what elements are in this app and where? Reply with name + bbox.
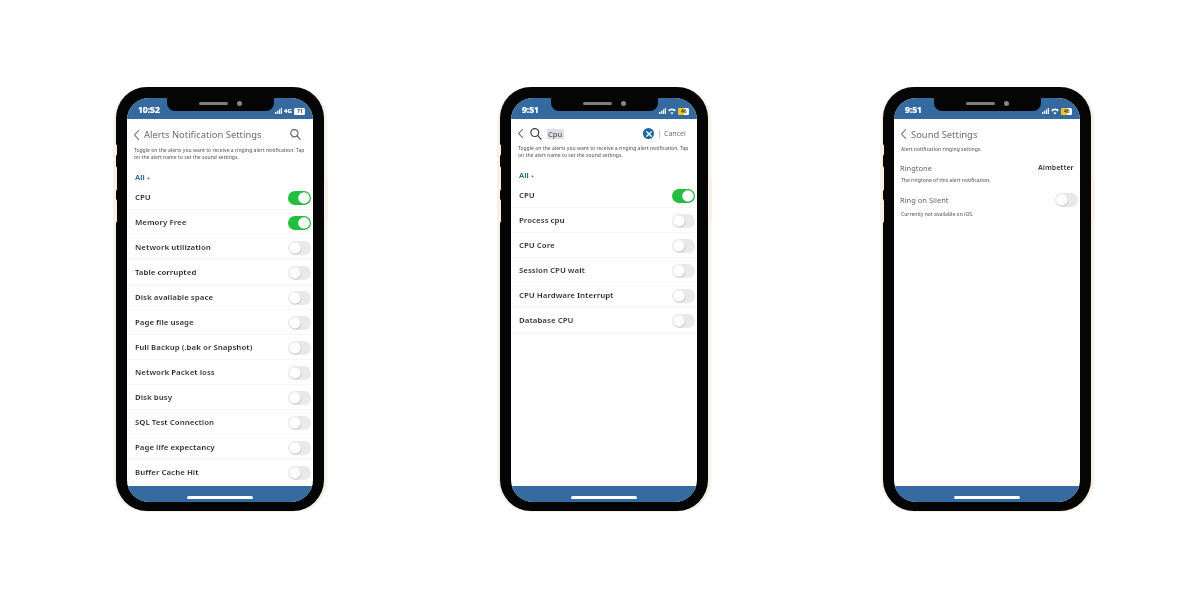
- button[interactable]: Off: [672, 214, 695, 228]
- button[interactable]: On: [288, 216, 311, 230]
- staticText: Process cpu: [519, 215, 672, 226]
- button[interactable]: Off: [288, 416, 311, 430]
- staticText: Database CPU: [519, 315, 672, 326]
- button[interactable]: Ring on Silent: [894, 193, 1080, 207]
- button[interactable]: Page file usage: [127, 310, 313, 335]
- staticText: 46: [681, 108, 687, 115]
- button[interactable]: On: [288, 191, 311, 205]
- staticText: SQL Test Connection: [135, 417, 288, 428]
- button[interactable]: Off: [288, 241, 311, 255]
- button[interactable]: Back: [516, 127, 525, 140]
- staticText: Page file usage: [135, 317, 288, 328]
- button[interactable]: Off: [288, 466, 311, 480]
- staticText: CPU Core: [519, 240, 672, 251]
- staticText: 9:51: [905, 104, 922, 116]
- button[interactable]: Disk busy: [127, 385, 313, 410]
- button[interactable]: Full Backup (.bak or Snapshot): [127, 335, 313, 360]
- button[interactable]: Back: [132, 128, 141, 142]
- staticText: 9:51: [522, 104, 539, 116]
- staticText: 46: [1064, 108, 1070, 115]
- staticText: Toggle on the alerts you want to receive…: [518, 145, 692, 159]
- staticText: All: [135, 172, 145, 182]
- button[interactable]: CPU Hardware Interrupt: [511, 283, 697, 308]
- staticText: Ring on Silent: [900, 195, 1055, 205]
- button[interactable]: Off: [672, 264, 695, 278]
- staticText: The ringtone of this alert notification.: [901, 177, 991, 184]
- button[interactable]: SQL Test Connection: [127, 410, 313, 435]
- button[interactable]: Off: [1055, 193, 1078, 207]
- staticText: CPU: [135, 192, 288, 203]
- button[interactable]: Off: [288, 316, 311, 330]
- button[interactable]: CPU: [511, 183, 697, 208]
- staticText: Session CPU wait: [519, 265, 672, 276]
- staticText: Network Packet loss: [135, 367, 288, 378]
- staticText: Alerts Notification Settings: [144, 128, 288, 141]
- button[interactable]: All: [511, 169, 540, 181]
- button[interactable]: Off: [288, 291, 311, 305]
- button[interactable]: All: [127, 171, 156, 183]
- staticText: CPU: [519, 190, 672, 201]
- button[interactable]: Page life expectancy: [127, 435, 313, 460]
- button[interactable]: On: [672, 189, 695, 203]
- staticText: Alert notification ringing settings.: [901, 146, 982, 153]
- button[interactable]: Process cpu: [511, 208, 697, 233]
- button[interactable]: Disk available space: [127, 285, 313, 310]
- staticText: 71: [297, 108, 303, 115]
- button[interactable]: Back: [899, 127, 908, 141]
- staticText: Ringtone: [900, 163, 1038, 173]
- staticText: Disk busy: [135, 392, 288, 403]
- button[interactable]: Memory Free: [127, 210, 313, 235]
- button[interactable]: CPU: [127, 185, 313, 210]
- staticText: Page life expectancy: [135, 442, 288, 453]
- button[interactable]: Off: [288, 266, 311, 280]
- staticText: Buffer Cache Hit: [135, 467, 288, 478]
- staticText: Memory Free: [135, 217, 288, 228]
- button[interactable]: Network utilization: [127, 235, 313, 260]
- staticText: Disk available space: [135, 292, 288, 303]
- staticText: Network utilization: [135, 242, 288, 253]
- button[interactable]: Off: [288, 341, 311, 355]
- staticText: Table corrupted: [135, 267, 288, 278]
- button[interactable]: CPU Core: [511, 233, 697, 258]
- button[interactable]: Database CPU: [511, 308, 697, 333]
- staticText: 4G: [284, 107, 292, 115]
- staticText: All: [519, 170, 529, 180]
- staticText: CPU Hardware Interrupt: [519, 290, 672, 301]
- staticText: Aimbetter: [1038, 163, 1074, 173]
- staticText: Cpu: [548, 129, 563, 139]
- staticText: 10:52: [138, 104, 160, 116]
- button[interactable]: Cancel: [664, 129, 686, 139]
- button[interactable]: Off: [288, 366, 311, 380]
- button[interactable]: Table corrupted: [127, 260, 313, 285]
- staticText: Sound Settings: [911, 128, 978, 141]
- staticText: Toggle on the alerts you want to receive…: [134, 147, 308, 161]
- button[interactable]: Off: [672, 239, 695, 253]
- button[interactable]: Off: [288, 441, 311, 455]
- button[interactable]: Search: [288, 127, 303, 142]
- button[interactable]: Off: [672, 314, 695, 328]
- staticText: Full Backup (.bak or Snapshot): [135, 342, 288, 353]
- staticText: Currently not available on iOS.: [901, 211, 974, 218]
- button[interactable]: Network Packet loss: [127, 360, 313, 385]
- button[interactable]: Session CPU wait: [511, 258, 697, 283]
- button[interactable]: Ringtone: [894, 163, 1080, 173]
- staticText: Cancel: [664, 129, 686, 139]
- button[interactable]: Off: [672, 289, 695, 303]
- button[interactable]: Clear search: [643, 128, 654, 139]
- button[interactable]: Off: [288, 391, 311, 405]
- button[interactable]: Buffer Cache Hit: [127, 460, 313, 485]
